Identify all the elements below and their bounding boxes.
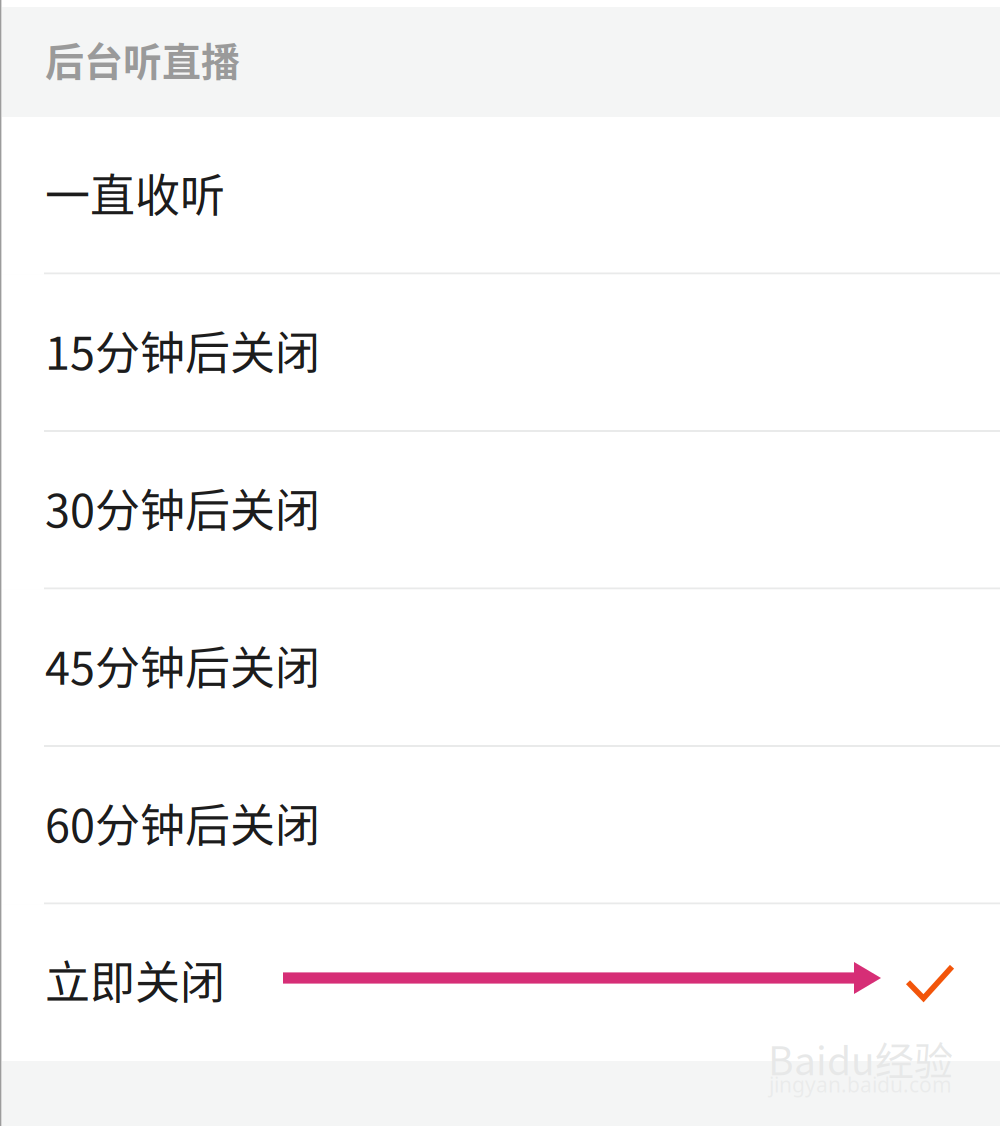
button[interactable]: 60分钟后关闭	[0, 747, 1000, 904]
button[interactable]: 30分钟后关闭	[0, 432, 1000, 589]
button[interactable]: 15分钟后关闭	[0, 274, 1000, 432]
staticText: Baidu经验	[768, 1030, 953, 1086]
staticText: 30分钟后关闭	[45, 475, 320, 540]
staticText: jingyan.baidu.com	[769, 1070, 952, 1099]
button[interactable]: 45分钟后关闭	[0, 589, 1000, 747]
staticText: 立即关闭	[45, 947, 225, 1012]
staticText: 15分钟后关闭	[45, 318, 320, 383]
staticText: 后台听直播	[45, 31, 240, 87]
staticText: 45分钟后关闭	[45, 633, 320, 698]
button[interactable]: 一直收听	[0, 117, 1000, 274]
button[interactable]: 立即关闭	[0, 904, 1000, 1061]
staticText: 60分钟后关闭	[45, 790, 320, 855]
staticText: 一直收听	[45, 160, 225, 225]
